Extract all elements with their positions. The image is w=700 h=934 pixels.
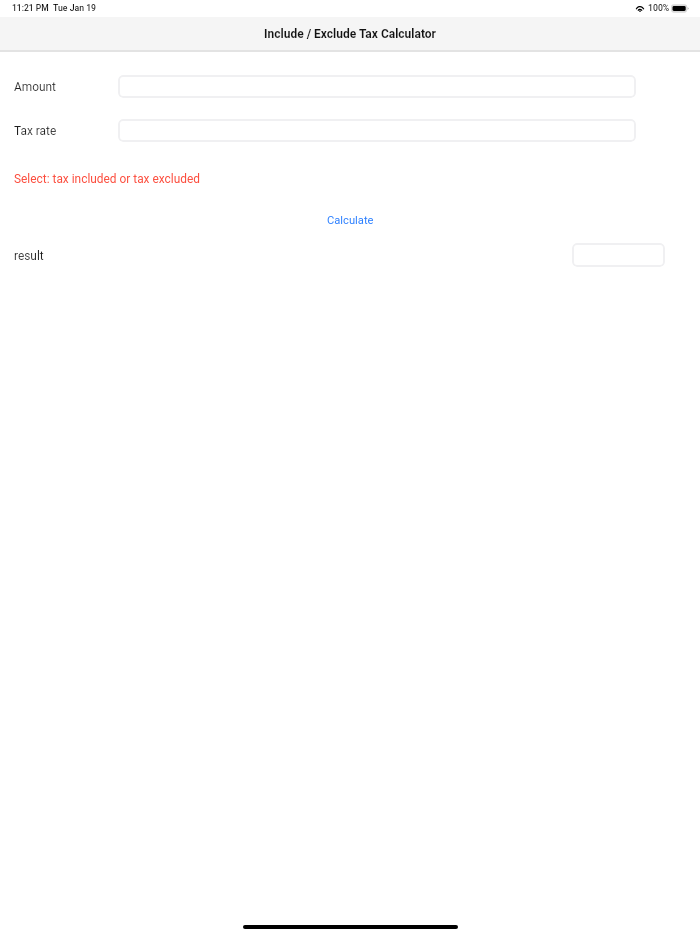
staticText: 100% bbox=[648, 3, 670, 13]
staticText: Calculate bbox=[327, 214, 374, 227]
button[interactable]: Amount input bbox=[118, 75, 636, 98]
staticText: Tax rate bbox=[14, 124, 57, 138]
button[interactable]: Calculate bbox=[313, 210, 388, 231]
button[interactable]: result value bbox=[572, 243, 665, 267]
other: Battery bbox=[671, 4, 689, 13]
staticText: Amount bbox=[14, 80, 56, 94]
staticText: Tue Jan 19 bbox=[53, 3, 97, 13]
staticText: result bbox=[14, 249, 44, 263]
other: Wi-Fi bbox=[635, 4, 645, 12]
button[interactable]: Tax rate input bbox=[118, 119, 636, 142]
staticText: 11:21 PM bbox=[12, 3, 49, 13]
staticText: Select: tax included or tax excluded bbox=[14, 172, 200, 186]
staticText: Include / Exclude Tax Calculator bbox=[264, 27, 437, 41]
